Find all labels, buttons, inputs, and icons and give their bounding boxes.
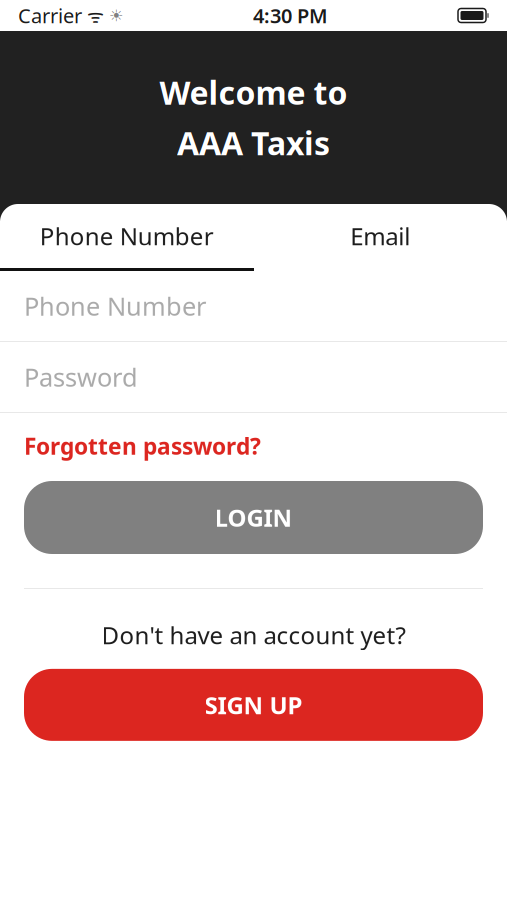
staticText: Welcome to [159, 71, 347, 113]
staticText: Email [350, 220, 410, 252]
staticText: Phone Number [24, 289, 206, 323]
staticText: Carrier [18, 2, 82, 29]
staticText: Password [24, 360, 138, 394]
staticText: Don't have an account yet? [101, 619, 405, 651]
staticText: ᯤ [82, 3, 104, 28]
staticText: LOGIN [214, 502, 292, 533]
button[interactable]: Email [253, 204, 507, 268]
button[interactable]: Forgotten password? [0, 413, 507, 479]
button[interactable]: LOGIN [24, 481, 483, 554]
staticText: ☀ [104, 6, 123, 25]
staticText: SIGN UP [204, 689, 302, 721]
staticText: Phone Number [40, 220, 214, 252]
button[interactable]: Phone Number [0, 204, 253, 268]
staticText: 4:30 PM [253, 2, 328, 29]
staticText: AAA Taxis [177, 121, 330, 164]
staticText: Forgotten password? [24, 431, 261, 461]
button[interactable]: SIGN UP [24, 669, 483, 741]
